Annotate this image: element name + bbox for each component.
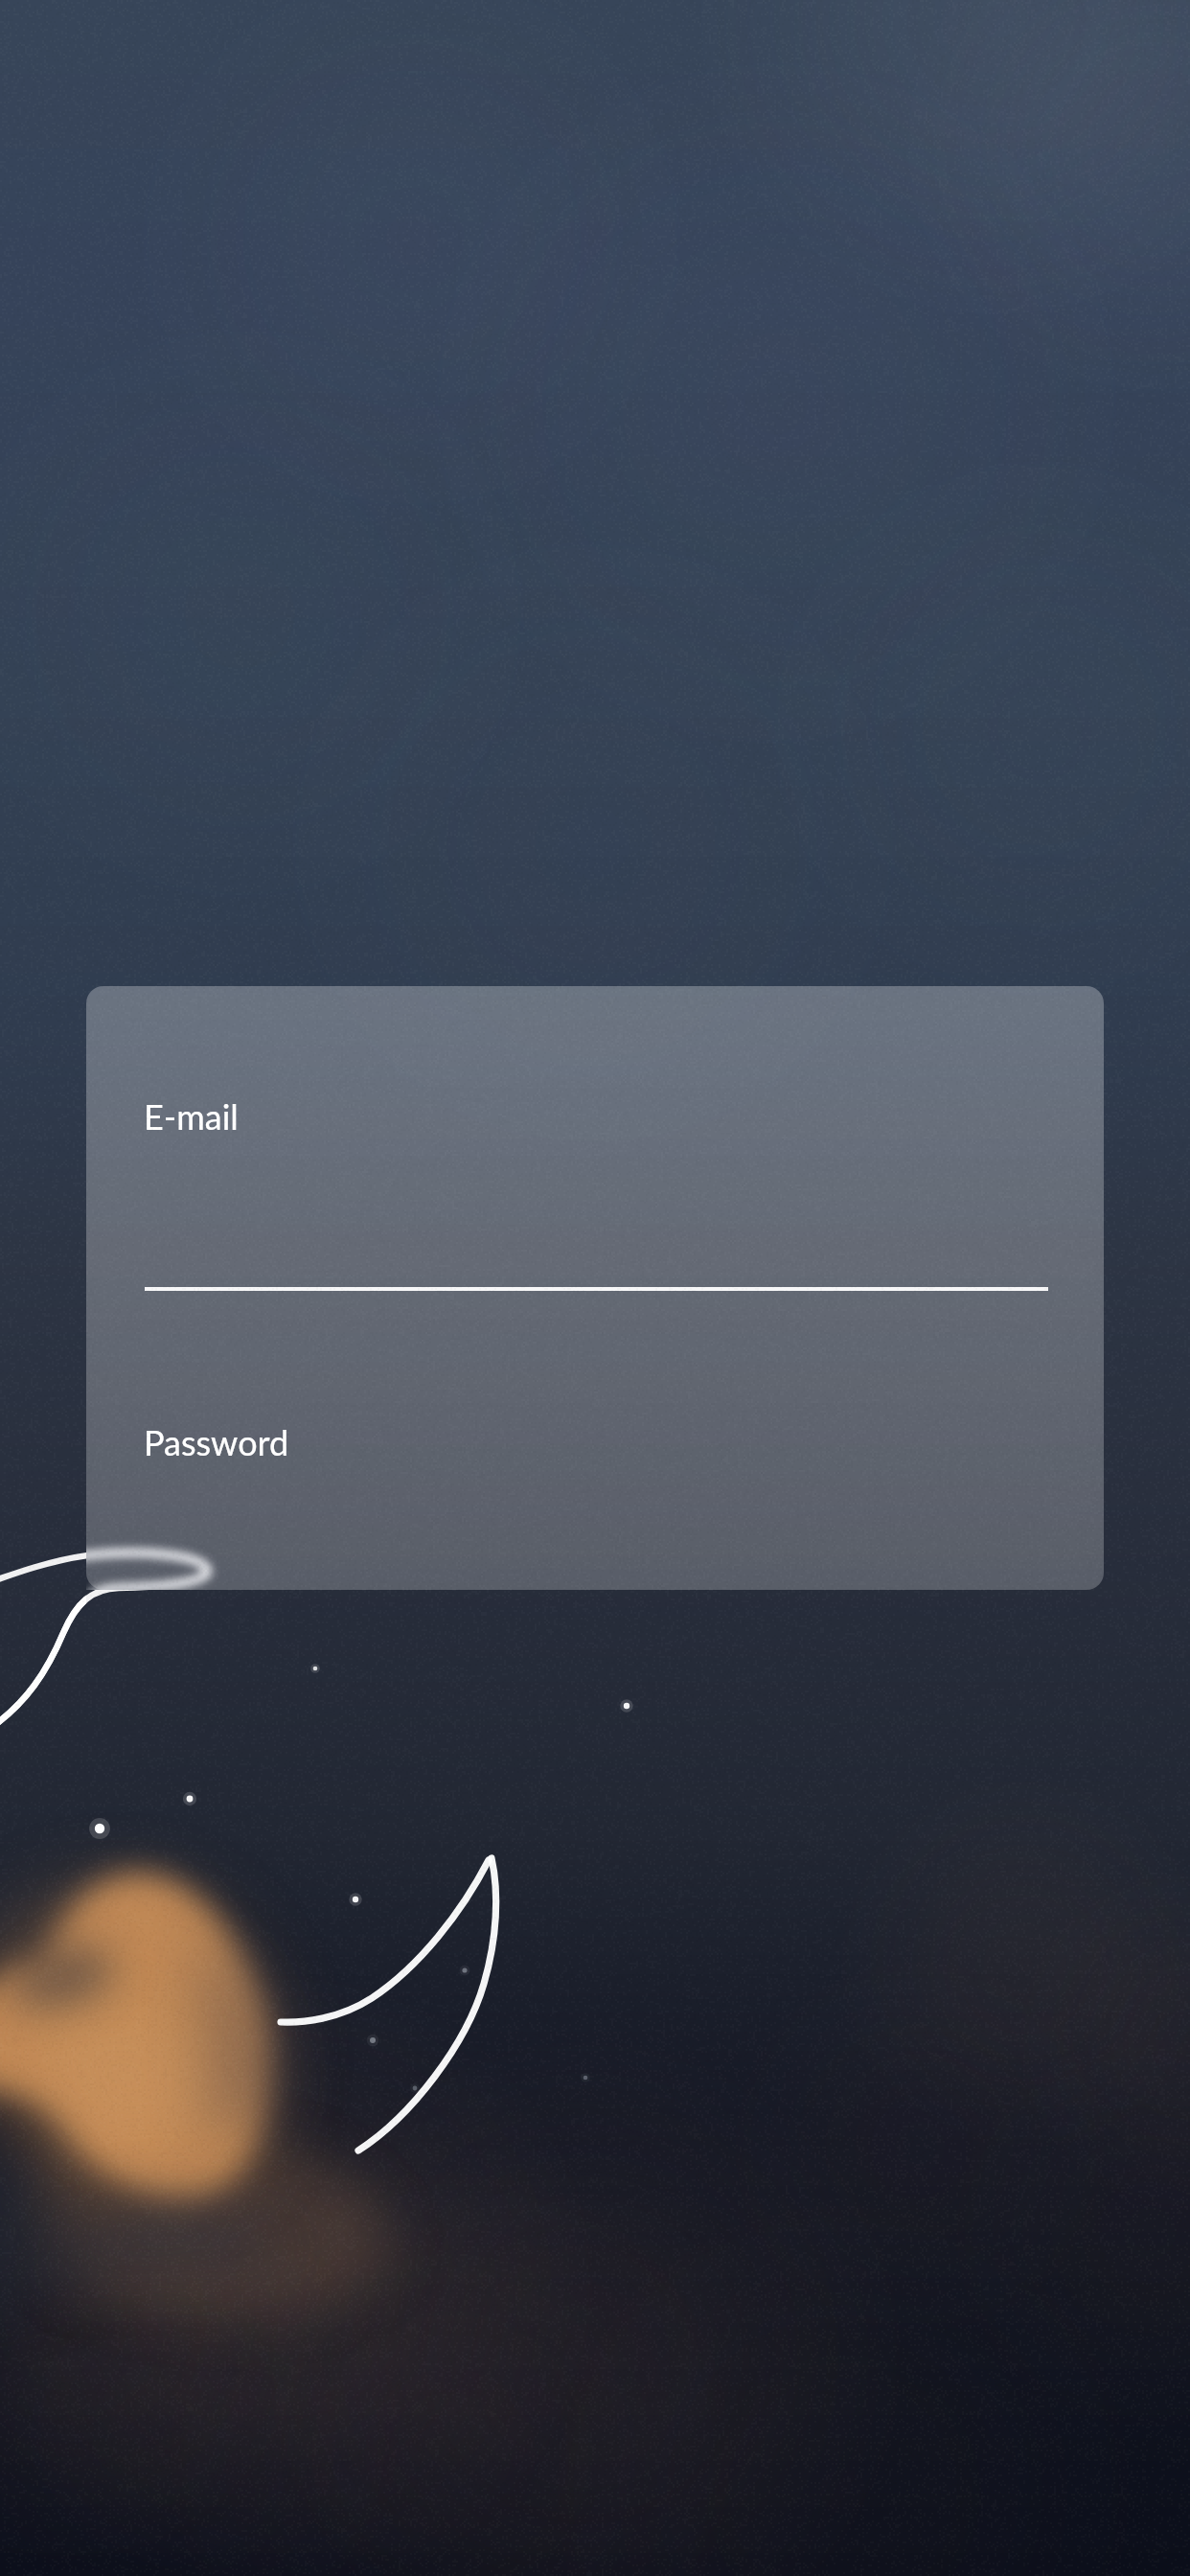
button[interactable]: Password input field (86, 1389, 1104, 1590)
other: Sign in form (86, 986, 1104, 1590)
staticText: E-mail (144, 1095, 239, 1137)
button[interactable]: E-mail input field (86, 1063, 1104, 1302)
staticText: Password (144, 1421, 289, 1462)
